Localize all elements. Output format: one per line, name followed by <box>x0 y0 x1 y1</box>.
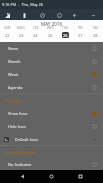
staticText: No Indicator <box>8 162 32 167</box>
staticText: Week <box>8 72 19 77</box>
staticText: TUE <box>33 26 39 30</box>
button[interactable]: FRI <box>73 26 88 38</box>
staticText: SUN <box>4 26 11 30</box>
staticText: 9:16 PM - Thu, May 26 <box>2 2 44 7</box>
staticText: Calendar Options <box>5 150 36 155</box>
staticText: 23 <box>19 33 24 38</box>
staticText: Agenda <box>8 85 23 90</box>
button[interactable]: Calendar Options <box>0 146 103 159</box>
button[interactable]: Recent apps <box>74 170 87 183</box>
staticText: Icon Style <box>5 98 23 103</box>
button[interactable]: Default Icon <box>0 133 103 146</box>
button[interactable]: Home <box>45 170 58 183</box>
staticText: Default Icon <box>15 137 38 142</box>
button[interactable]: SAT <box>88 26 103 38</box>
button[interactable]: More options <box>88 10 98 20</box>
button[interactable]: TUE <box>28 26 43 38</box>
button[interactable]: None <box>0 42 103 55</box>
button[interactable]: THU <box>58 26 73 38</box>
staticText: Hide Icon <box>8 124 26 129</box>
staticText: 26 <box>63 33 68 38</box>
staticText: 25 <box>48 33 53 38</box>
button[interactable]: Week <box>0 68 103 81</box>
staticText: 28 <box>93 33 98 38</box>
staticText: None <box>8 46 19 51</box>
staticText: Show Icon <box>8 111 28 116</box>
button[interactable]: MON <box>14 26 28 38</box>
staticText: 22 <box>5 33 10 38</box>
button[interactable]: Agenda <box>0 81 103 94</box>
staticText: 24 <box>33 33 38 38</box>
staticText: WED <box>47 26 54 30</box>
staticText: MAY 2016 <box>0 21 103 27</box>
button[interactable]: Show Icon <box>0 107 103 120</box>
staticText: SAT <box>93 26 99 30</box>
button[interactable]: Add event <box>69 10 79 20</box>
button[interactable]: Hide events <box>37 10 47 20</box>
staticText: FRI <box>78 26 83 30</box>
button[interactable]: Signal <box>2 10 12 20</box>
button[interactable]: Month <box>0 55 103 68</box>
button[interactable]: Back <box>16 170 29 183</box>
staticText: 27 <box>78 33 83 38</box>
button[interactable]: Refresh <box>54 10 64 20</box>
button[interactable]: Hide Icon <box>0 120 103 133</box>
button[interactable]: SUN <box>0 26 14 38</box>
staticText: THU <box>62 26 69 30</box>
staticText: MON <box>17 26 25 30</box>
button[interactable]: No Indicator <box>0 159 103 170</box>
button[interactable]: WED <box>43 26 58 38</box>
staticText: Month <box>8 59 21 64</box>
button[interactable]: Icon Style <box>0 94 103 107</box>
button[interactable]: Battery <box>19 10 29 20</box>
